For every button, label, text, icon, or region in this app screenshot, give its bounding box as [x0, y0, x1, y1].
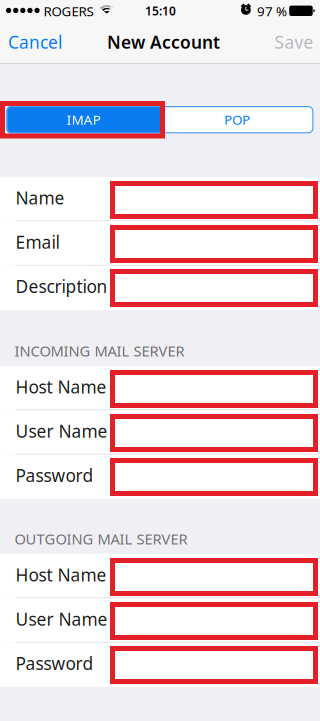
button[interactable]: IMAP	[6, 106, 161, 133]
staticText: OUTGOING MAIL SERVER	[14, 529, 187, 548]
button[interactable]: POP	[161, 106, 313, 133]
button[interactable]: Description	[0, 266, 320, 310]
staticText: IMAP	[67, 111, 101, 128]
staticText: 15:10	[145, 3, 176, 19]
staticText: User Name	[15, 419, 107, 442]
button[interactable]: Email	[0, 221, 320, 266]
button[interactable]: User Name	[0, 410, 320, 455]
button[interactable]: Host Name	[0, 366, 320, 410]
button[interactable]: Cancel	[0, 22, 72, 63]
button[interactable]: Host Name	[0, 554, 320, 598]
staticText: Cancel	[8, 30, 62, 53]
staticText: User Name	[15, 607, 107, 630]
button[interactable]: User Name	[0, 598, 320, 643]
button[interactable]: Name	[0, 177, 320, 221]
staticText: Save	[274, 30, 313, 53]
staticText: New Account	[107, 30, 220, 53]
button[interactable]: Save	[254, 22, 316, 63]
staticText: Password	[15, 464, 93, 487]
staticText: Password	[15, 652, 93, 675]
staticText: INCOMING MAIL SERVER	[14, 341, 184, 360]
staticText: Description	[15, 275, 107, 298]
staticText: Host Name	[15, 563, 106, 586]
staticText: ROGERS	[43, 2, 93, 20]
staticText: Host Name	[15, 375, 106, 398]
staticText: 97 %	[257, 2, 287, 20]
staticText: Name	[15, 186, 64, 209]
staticText: Email	[15, 230, 59, 253]
button[interactable]: Password	[0, 455, 320, 499]
button[interactable]: Password	[0, 643, 320, 687]
staticText: POP	[224, 111, 250, 128]
